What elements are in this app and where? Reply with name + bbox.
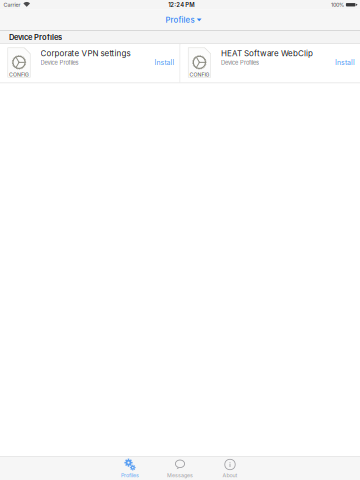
button[interactable]: CONFIG [180,44,360,83]
staticText: 100% [331,1,344,8]
staticText: About [222,472,237,478]
staticText: CONFIG [189,71,209,78]
staticText: Carrier [4,1,21,8]
staticText: Corporate VPN settings [40,48,130,58]
staticText: Device Profiles [9,33,62,42]
staticText: Install [155,58,175,67]
button[interactable]: Messages [155,457,205,480]
button[interactable]: Profiles [105,457,155,480]
staticText: 12:24 PM [168,1,194,8]
staticText: Install [335,58,355,67]
button[interactable]: Profiles [154,13,206,27]
staticText: HEAT Software WebClip [221,48,313,58]
button[interactable]: CONFIG [0,44,180,83]
staticText: CONFIG [9,71,29,78]
staticText: Profiles [121,472,139,478]
button[interactable]: About [205,457,255,480]
staticText: Device Profiles [221,59,259,66]
staticText: Device Profiles [40,59,78,66]
staticText: Messages [167,472,193,478]
staticText: Profiles [165,15,194,25]
